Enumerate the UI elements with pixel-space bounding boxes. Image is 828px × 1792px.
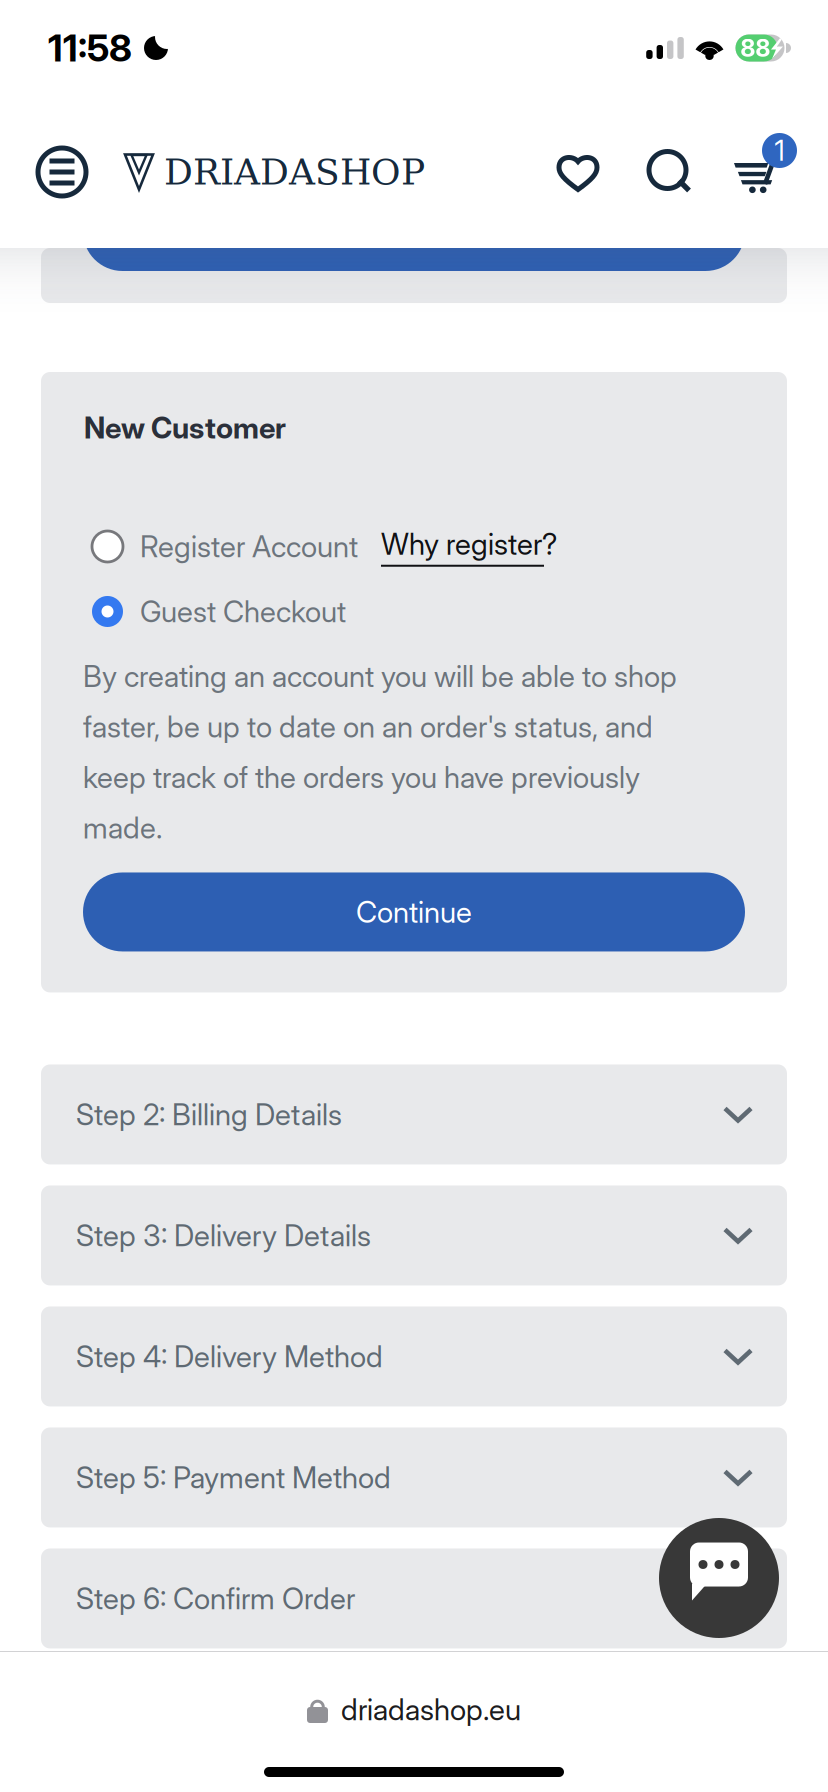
button[interactable]: Step 3: Delivery Details	[41, 1185, 787, 1285]
staticText: By creating an account you will be able …	[83, 658, 677, 845]
staticText: Guest Checkout	[140, 594, 346, 629]
staticText: Register Account	[140, 529, 358, 564]
staticText: 88	[740, 33, 770, 62]
button[interactable]: Guest Checkout	[92, 589, 346, 633]
staticText: 11:58	[48, 25, 132, 71]
staticText: Step 6: Confirm Order	[76, 1581, 355, 1616]
button[interactable]: Step 4: Delivery Method	[41, 1306, 787, 1406]
staticText: DRIADASHOP	[164, 151, 425, 193]
button[interactable]: Wishlist	[556, 152, 600, 192]
staticText: 1	[774, 134, 784, 167]
staticText: Step 2: Billing Details	[76, 1097, 342, 1132]
staticText: Step 5: Payment Method	[76, 1460, 391, 1495]
staticText: Step 3: Delivery Details	[76, 1218, 371, 1253]
staticText: Step 4: Delivery Method	[76, 1339, 383, 1374]
button[interactable]: Menu	[34, 144, 90, 200]
staticText: Why register?	[381, 526, 557, 562]
button[interactable]: Why register?	[381, 524, 557, 568]
staticText: driadashop.eu	[341, 1692, 521, 1727]
button[interactable]: Search	[649, 151, 691, 192]
button[interactable]: Address, driadashop.eu	[307, 1692, 521, 1727]
staticText: New Customer	[84, 410, 286, 445]
button[interactable]: Step 6: Confirm Order	[41, 1548, 787, 1648]
button[interactable]: Shopping cart, 1 item	[734, 146, 797, 198]
button[interactable]: Register Account	[92, 524, 358, 568]
button[interactable]: Step 5: Payment Method	[41, 1427, 787, 1527]
staticText: Continue	[356, 894, 472, 930]
button[interactable]: Continue	[83, 872, 745, 951]
button[interactable]: Step 2: Billing Details	[41, 1064, 787, 1164]
button[interactable]: Chat	[659, 1518, 779, 1638]
